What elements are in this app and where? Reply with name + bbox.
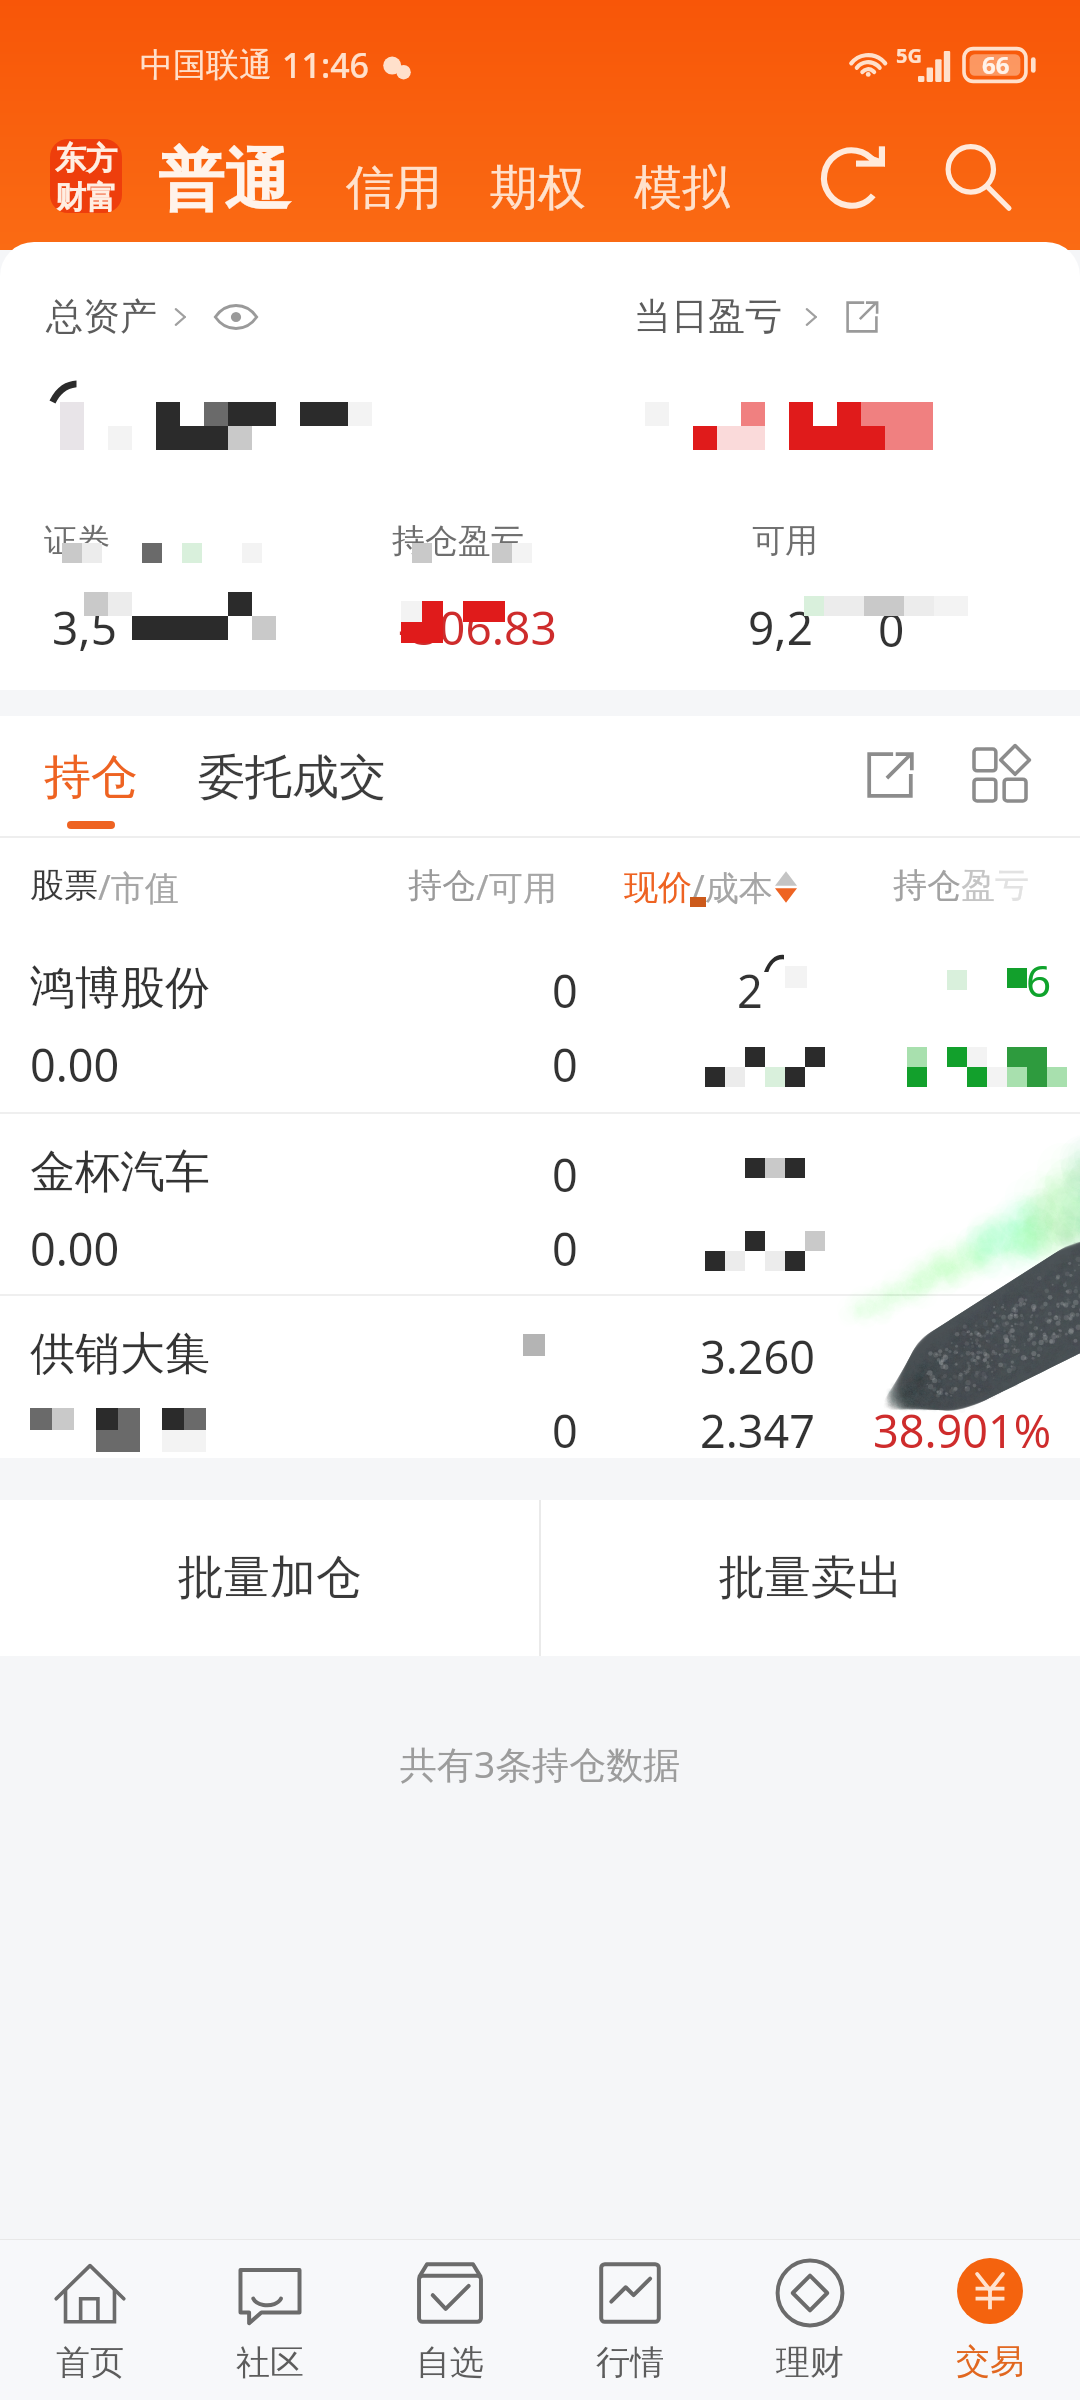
button[interactable]: 信用 — [338, 152, 450, 224]
staticText: 当日盈亏 — [634, 293, 782, 340]
button[interactable]: 当日盈亏 — [634, 293, 880, 340]
staticText: 0.00 — [30, 1034, 120, 1095]
staticText: 自选 — [416, 2341, 484, 2384]
staticText: 东方 — [55, 139, 117, 178]
staticText: 0 — [552, 960, 578, 1021]
staticText: 总资产 — [46, 293, 157, 340]
staticText: 0 — [552, 1034, 578, 1095]
staticText: 理财 — [776, 2341, 844, 2384]
staticText: /成本 — [692, 864, 773, 910]
staticText: 证券 — [44, 520, 110, 562]
staticText: 0 — [878, 598, 905, 661]
button[interactable]: Refresh — [800, 122, 912, 234]
button[interactable]: 自选 — [360, 2240, 540, 2400]
staticText: 9,2 — [748, 596, 813, 659]
staticText: 0 — [552, 1218, 578, 1279]
staticText: 盈 — [961, 864, 995, 907]
staticText: 0 — [552, 1400, 578, 1461]
staticText: 可用 — [752, 520, 818, 562]
staticText: 2 — [737, 960, 763, 1021]
button[interactable]: 期权 — [482, 152, 594, 224]
staticText: 金杯汽车 — [30, 1144, 210, 1201]
staticText: /市值 — [98, 864, 179, 910]
button[interactable]: 总资产 — [46, 293, 259, 340]
staticText: 66 — [982, 48, 1010, 81]
staticText: 3.260 — [700, 1326, 816, 1387]
staticText: 委托成交 — [198, 748, 386, 807]
button[interactable] — [0, 1296, 1080, 1478]
button[interactable]: East Money — [50, 139, 122, 213]
staticText: /可用 — [476, 864, 557, 910]
button[interactable]: 首页 — [0, 2240, 180, 2400]
staticText: 批量加仓 — [178, 1549, 362, 1607]
staticText: 持仓 — [44, 748, 138, 807]
button[interactable]: 行情 — [540, 2240, 720, 2400]
staticText: -306.83 — [398, 596, 557, 659]
button[interactable]: 批量卖出 — [541, 1500, 1080, 1656]
staticText: 模拟 — [634, 158, 730, 218]
staticText: 5G — [896, 42, 922, 69]
staticText: 持仓 — [893, 864, 961, 907]
button[interactable]: Export — [845, 730, 935, 820]
staticText: 供销大集 — [30, 1326, 210, 1383]
staticText: 中国联通 — [140, 44, 272, 86]
staticText: 11:46 — [282, 42, 370, 88]
button[interactable] — [0, 930, 1080, 1112]
staticText: 共有3条持仓数据 — [400, 1738, 681, 1789]
button[interactable]: 理财 — [720, 2240, 900, 2400]
staticText: 社区 — [236, 2341, 304, 2384]
staticText: 交易 — [956, 2340, 1024, 2383]
staticText: 信用 — [346, 158, 442, 218]
button[interactable]: 委托成交 — [198, 748, 386, 807]
staticText: 期权 — [490, 158, 586, 218]
staticText: 0.00 — [30, 1218, 120, 1279]
staticText: 38.901% — [873, 1400, 1052, 1461]
button[interactable]: 批量加仓 — [0, 1500, 539, 1656]
button[interactable]: 持仓 — [44, 748, 138, 829]
staticText: 普通 — [158, 139, 290, 222]
button[interactable]: Search — [922, 122, 1034, 234]
staticText: 批量卖出 — [719, 1549, 903, 1607]
button[interactable]: 交易 — [900, 2240, 1080, 2400]
staticText: 首页 — [56, 2341, 124, 2384]
staticText: 0 — [552, 1144, 578, 1205]
staticText: 行情 — [596, 2341, 664, 2384]
staticText: 持仓 — [408, 864, 476, 907]
staticText: 鸿博股份 — [30, 960, 210, 1017]
staticText: 3,5 — [52, 596, 117, 659]
button[interactable]: 社区 — [180, 2240, 360, 2400]
button[interactable]: 模拟 — [626, 152, 738, 224]
staticText: 2.347 — [700, 1400, 816, 1461]
button[interactable] — [0, 1114, 1080, 1296]
staticText: 财富 — [55, 178, 117, 213]
staticText: 现价 — [624, 866, 692, 909]
button[interactable]: Grid view — [955, 730, 1045, 820]
staticText: 6 — [1026, 950, 1052, 1010]
staticText: 股票 — [30, 864, 98, 907]
staticText: 持仓盈亏 — [392, 520, 524, 562]
button[interactable]: 普通 — [152, 135, 296, 226]
staticText: 亏 — [995, 864, 1029, 907]
